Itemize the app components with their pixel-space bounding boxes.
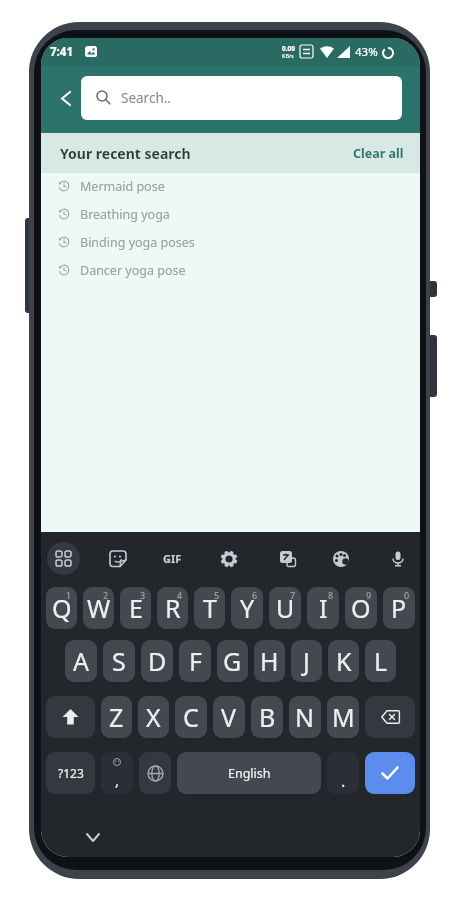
button[interactable]: Clear all	[353, 145, 404, 162]
staticText: 8	[328, 589, 334, 601]
staticText: P	[391, 591, 407, 625]
staticText: D	[148, 644, 167, 678]
button[interactable]	[365, 752, 415, 794]
button[interactable]: C	[175, 696, 207, 738]
button[interactable]	[381, 542, 414, 575]
button[interactable]: R	[157, 587, 188, 629]
staticText: 1	[66, 589, 72, 601]
staticText: 9	[366, 589, 372, 601]
staticText: .	[341, 770, 346, 792]
staticText: 0	[404, 589, 410, 601]
staticText: K	[336, 644, 352, 678]
button[interactable]	[271, 542, 304, 575]
button[interactable]	[46, 696, 95, 738]
button[interactable]	[52, 84, 80, 112]
staticText: E	[129, 591, 143, 625]
staticText: B	[259, 700, 276, 734]
button[interactable]: A	[65, 640, 97, 682]
button[interactable]: T	[194, 587, 225, 629]
staticText: G	[223, 644, 242, 678]
button[interactable]: ,	[101, 752, 133, 794]
button[interactable]: B	[251, 696, 283, 738]
staticText: Binding yoga poses	[80, 234, 195, 251]
button[interactable]: English	[177, 752, 321, 794]
button[interactable]: ?123	[46, 752, 95, 794]
button[interactable]: X	[138, 696, 169, 738]
staticText: GIF	[163, 551, 182, 566]
button[interactable]: .	[327, 752, 359, 794]
button[interactable]	[324, 542, 357, 575]
button[interactable]: V	[213, 696, 245, 738]
button[interactable]: Dancer yoga pose	[41, 256, 420, 284]
staticText: English	[228, 765, 271, 782]
button[interactable]: Y	[231, 587, 263, 629]
staticText: I	[319, 591, 328, 625]
button[interactable]: O	[345, 587, 377, 629]
button[interactable]: Search..	[81, 76, 402, 120]
staticText: W	[87, 591, 111, 625]
staticText: X	[146, 700, 161, 734]
button[interactable]: K	[328, 640, 359, 682]
button[interactable]	[212, 542, 245, 575]
staticText: 0.00	[282, 44, 295, 53]
staticText: U	[276, 591, 295, 625]
staticText: 5	[214, 589, 220, 601]
staticText: 4	[177, 589, 183, 601]
button[interactable]: G	[217, 640, 248, 682]
staticText: Your recent search	[60, 144, 191, 163]
staticText: Mermaid pose	[80, 178, 165, 195]
button[interactable]: I	[307, 587, 339, 629]
staticText: Y	[240, 591, 255, 625]
button[interactable]: S	[103, 640, 135, 682]
button[interactable]: W	[83, 587, 114, 629]
staticText: ?123	[58, 765, 84, 781]
staticText: Search..	[121, 89, 171, 107]
button[interactable]	[365, 696, 415, 738]
staticText: F	[189, 644, 202, 678]
button[interactable]: Breathing yoga	[41, 200, 420, 228]
button[interactable]: F	[179, 640, 211, 682]
staticText: 6	[252, 589, 258, 601]
button[interactable]: J	[291, 640, 322, 682]
staticText: 7	[290, 589, 296, 601]
staticText: V	[221, 700, 237, 734]
button[interactable]: P	[383, 587, 415, 629]
staticText: Clear all	[353, 145, 404, 162]
staticText: 2	[103, 589, 109, 601]
staticText: Q	[52, 591, 72, 625]
staticText: H	[260, 644, 279, 678]
button[interactable]: Q	[46, 587, 77, 629]
button[interactable]	[47, 542, 80, 575]
staticText: T	[203, 591, 217, 625]
button[interactable]: Binding yoga poses	[41, 228, 420, 256]
button[interactable]: GIF	[156, 542, 189, 575]
button[interactable]: Mermaid pose	[41, 172, 420, 200]
staticText: Breathing yoga	[80, 206, 170, 223]
staticText: A	[73, 644, 89, 678]
button[interactable]	[101, 542, 134, 575]
staticText: R	[165, 591, 181, 625]
button[interactable]: Z	[101, 696, 132, 738]
staticText: O	[351, 591, 371, 625]
button[interactable]: U	[269, 587, 301, 629]
staticText: ,	[115, 770, 120, 790]
button[interactable]: L	[365, 640, 396, 682]
staticText: Dancer yoga pose	[80, 262, 186, 279]
staticText: J	[303, 644, 310, 678]
staticText: S	[112, 644, 126, 678]
staticText: N	[295, 700, 315, 734]
staticText: L	[374, 644, 388, 678]
staticText: M	[332, 700, 355, 734]
staticText: 43%	[355, 44, 378, 60]
staticText: KB/s	[282, 52, 294, 59]
staticText: 3	[140, 589, 146, 601]
staticText: C	[183, 700, 199, 734]
button[interactable]: N	[289, 696, 321, 738]
button[interactable]: M	[327, 696, 359, 738]
button[interactable]: E	[120, 587, 151, 629]
button[interactable]: D	[141, 640, 173, 682]
button[interactable]: H	[254, 640, 285, 682]
staticText: Z	[109, 700, 124, 734]
staticText: 7:41	[50, 44, 73, 60]
button[interactable]	[139, 752, 171, 794]
